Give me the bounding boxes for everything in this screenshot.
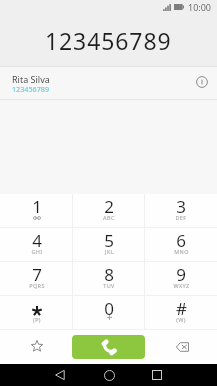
- button[interactable]: Back: [49, 364, 71, 386]
- button[interactable]: Contact details: [191, 71, 213, 93]
- staticText: 5: [104, 229, 114, 252]
- staticText: (W): [176, 316, 186, 323]
- button[interactable]: Favorites: [26, 335, 47, 356]
- staticText: PQRS: [29, 282, 45, 289]
- staticText: 1: [32, 195, 42, 218]
- staticText: Rita Silva: [12, 73, 50, 85]
- staticText: 123456789: [12, 84, 50, 94]
- staticText: 10:00: [188, 1, 212, 13]
- staticText: 4: [32, 229, 42, 252]
- staticText: 6: [176, 229, 186, 252]
- staticText: GHI: [31, 248, 43, 255]
- staticText: ABC: [103, 214, 115, 221]
- staticText: 7: [32, 263, 42, 286]
- button[interactable]: 4: [0, 228, 73, 262]
- button[interactable]: 7: [0, 262, 73, 296]
- button[interactable]: 9: [145, 262, 217, 296]
- staticText: DEF: [175, 214, 187, 221]
- button[interactable]: Call: [72, 335, 145, 359]
- button[interactable]: Home: [98, 364, 120, 386]
- staticText: JKL: [105, 248, 114, 255]
- button[interactable]: 1: [0, 194, 73, 228]
- staticText: (P): [33, 316, 41, 323]
- button[interactable]: (P): [0, 296, 73, 330]
- staticText: TUV: [103, 282, 115, 289]
- button[interactable]: 5: [73, 228, 145, 262]
- staticText: MNO: [174, 248, 189, 255]
- button[interactable]: 2: [73, 194, 145, 228]
- button[interactable]: Recents: [146, 364, 168, 386]
- button[interactable]: 6: [145, 228, 217, 262]
- button[interactable]: 3: [145, 194, 217, 228]
- staticText: 0: [104, 297, 114, 320]
- button[interactable]: 8: [73, 262, 145, 296]
- staticText: 2: [104, 195, 114, 218]
- button[interactable]: 123456789: [0, 14, 217, 66]
- button[interactable]: Rita Silva: [0, 66, 217, 100]
- staticText: 9: [176, 263, 186, 286]
- staticText: WXYZ: [173, 282, 190, 289]
- staticText: 8: [104, 263, 114, 286]
- staticText: 3: [176, 195, 186, 218]
- staticText: #: [176, 297, 187, 320]
- button[interactable]: Delete: [172, 337, 192, 357]
- staticText: 123456789: [45, 25, 172, 56]
- button[interactable]: 0: [73, 296, 145, 330]
- button[interactable]: #: [145, 296, 217, 330]
